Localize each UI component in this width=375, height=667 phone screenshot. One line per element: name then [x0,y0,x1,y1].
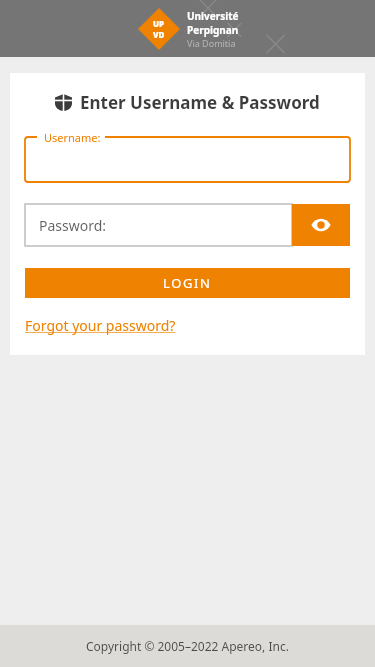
staticText: Username: [44,130,101,145]
staticText: Copyright © 2005–2022 Apereo, Inc. [86,638,289,654]
staticText: Password: [39,216,107,235]
staticText: VD [153,29,165,40]
staticText: Via Domitia [187,37,236,49]
button[interactable]: Username: [25,132,350,182]
button[interactable]: Show password [292,204,350,246]
staticText: Forgot your password? [25,316,176,335]
staticText: Perpignan [187,23,239,37]
staticText: Enter Username & Password [80,91,320,114]
button[interactable]: Password: [25,204,292,246]
button[interactable]: Forgot your password? [25,316,176,335]
staticText: LOGIN [163,274,212,292]
staticText: Université [187,9,239,23]
staticText: UP [153,18,165,29]
button[interactable]: LOGIN [25,268,350,298]
